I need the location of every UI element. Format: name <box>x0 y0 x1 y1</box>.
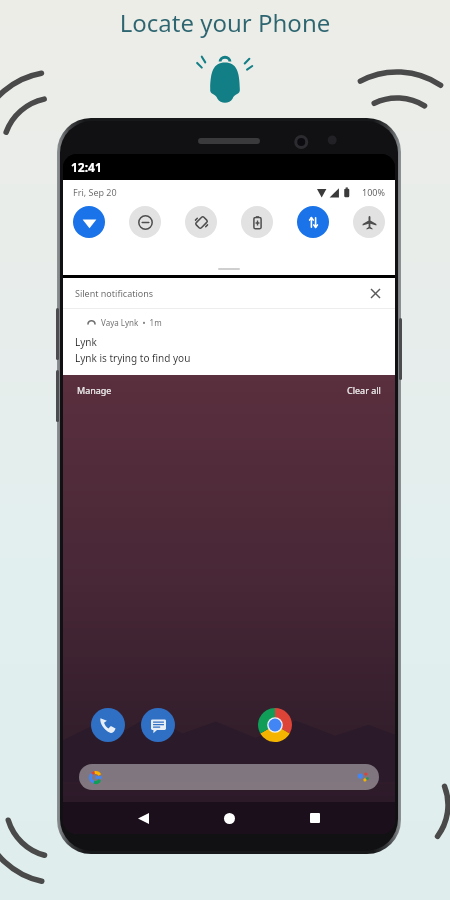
staticText: 100% <box>362 186 385 198</box>
other: Ringing bell <box>196 52 254 104</box>
button[interactable]: Messages <box>141 708 175 742</box>
button[interactable]: Dismiss silent notifications <box>367 285 383 301</box>
staticText: Manage <box>77 384 112 396</box>
button[interactable]: Do Not Disturb <box>129 206 161 238</box>
button[interactable]: Phone <box>91 708 125 742</box>
button[interactable] <box>79 764 379 790</box>
button[interactable]: Mobile data <box>297 206 329 238</box>
button[interactable]: Auto rotate <box>185 206 217 238</box>
button[interactable]: Clear all <box>347 384 381 396</box>
button[interactable]: Airplane mode <box>353 206 385 238</box>
button[interactable]: Silent notifications <box>63 278 395 308</box>
button[interactable]: Wi-Fi <box>73 206 105 238</box>
button[interactable]: Chrome <box>258 708 292 742</box>
staticText: Fri, Sep 20 <box>73 186 117 198</box>
staticText: Clear all <box>347 384 381 396</box>
staticText: Vaya Lynk • 1m <box>101 317 162 328</box>
staticText: Lynk <box>75 335 97 349</box>
staticText: 12:41 <box>71 159 102 175</box>
staticText: Lynk is trying to find you <box>75 351 191 365</box>
button[interactable]: Back <box>130 805 156 831</box>
staticText: Silent notifications <box>75 287 154 299</box>
button[interactable]: Recent apps <box>302 805 328 831</box>
button[interactable]: Manage <box>77 384 112 396</box>
staticText: Locate your Phone <box>0 6 450 39</box>
button[interactable]: Home <box>216 805 242 831</box>
button[interactable]: Battery Saver <box>241 206 273 238</box>
button[interactable]: Vaya Lynk • 1m <box>63 309 395 375</box>
